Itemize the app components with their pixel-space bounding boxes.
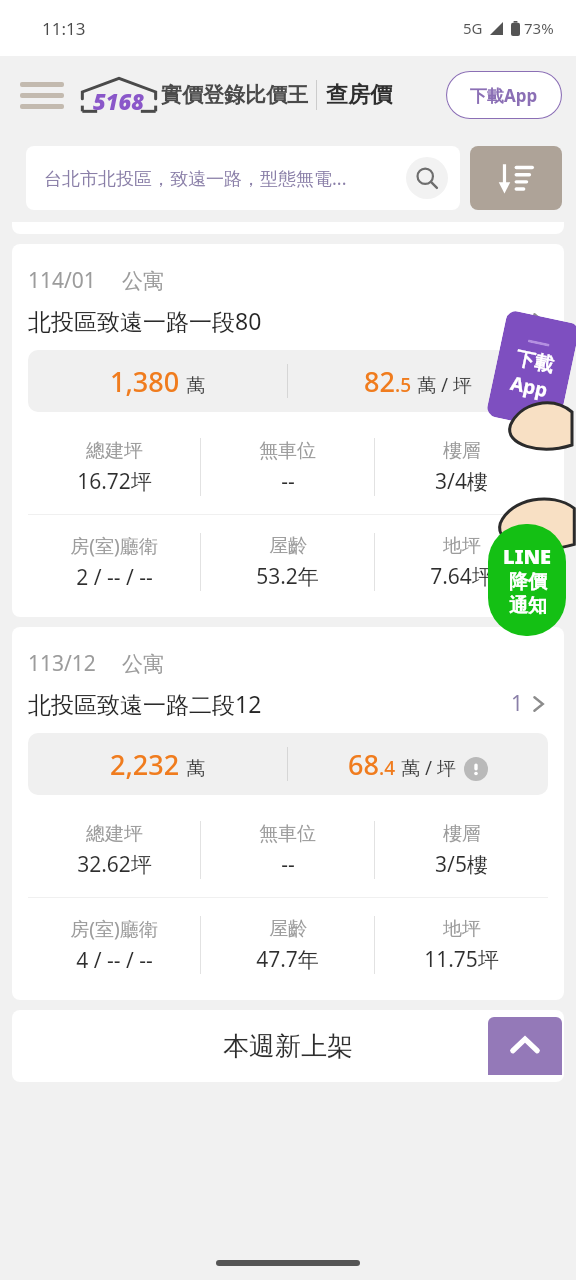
staticText: 北投區致遠一路二段12巷5弄14... xyxy=(28,688,269,719)
staticText: 地坪 xyxy=(443,917,481,941)
staticText: 屋齡 xyxy=(269,534,307,558)
button[interactable]: Sort xyxy=(470,146,562,210)
button[interactable]: 台北市北投區，致遠一路，型態無電... xyxy=(26,146,460,210)
staticText: 5168 xyxy=(93,86,145,114)
staticText: 房(室)廳衛 xyxy=(70,916,158,942)
staticText: -- xyxy=(281,850,295,879)
staticText: 房(室)廳衛 xyxy=(70,533,158,559)
staticText: 16.72坪 xyxy=(77,467,152,496)
staticText: 82 xyxy=(364,363,395,400)
staticText: 11:13 xyxy=(42,17,86,40)
staticText: 總建坪 xyxy=(86,439,143,463)
staticText: 3/4樓 xyxy=(435,467,488,496)
staticText: 2 / -- / -- xyxy=(76,563,153,592)
staticText: 5G xyxy=(463,18,483,38)
staticText: 47.7年 xyxy=(256,945,319,974)
staticText: 下載 xyxy=(514,346,556,378)
staticText: 1 xyxy=(511,689,524,718)
staticText: 公寓 xyxy=(122,268,164,294)
button[interactable]: Info xyxy=(464,757,488,781)
staticText: 無車位 xyxy=(259,822,316,846)
staticText: -- xyxy=(281,467,295,496)
button[interactable]: Scroll to top xyxy=(488,1017,562,1075)
staticText: 萬 xyxy=(186,374,205,398)
staticText: 7.64坪 xyxy=(430,562,493,591)
staticText: 萬 / 坪 xyxy=(401,755,456,781)
staticText: 屋齡 xyxy=(269,917,307,941)
button[interactable]: 查房價 xyxy=(326,81,392,109)
button[interactable]: 113/12 xyxy=(12,627,564,1000)
staticText: 通知 xyxy=(509,594,547,618)
staticText: 台北市北投區，致遠一路，型態無電... xyxy=(44,166,406,191)
staticText: App xyxy=(508,370,551,403)
staticText: 北投區致遠一路一段80巷4號3樓 xyxy=(28,305,269,336)
staticText: 114/01 xyxy=(28,266,96,295)
staticText: 73% xyxy=(524,18,554,38)
staticText: 總建坪 xyxy=(86,822,143,846)
button[interactable]: Menu xyxy=(20,75,66,115)
staticText: LINE xyxy=(503,543,552,570)
staticText: 1,380 xyxy=(110,363,180,400)
staticText: 2 xyxy=(511,306,524,335)
button[interactable]: LINE price alert xyxy=(488,524,566,636)
button[interactable]: 下載App xyxy=(446,71,562,119)
staticText: .5 xyxy=(395,372,412,398)
staticText: 3/5樓 xyxy=(435,850,488,879)
staticText: 4 / -- / -- xyxy=(76,946,153,975)
staticText: 32.62坪 xyxy=(77,850,152,879)
staticText: 下載App xyxy=(470,84,538,107)
staticText: .4 xyxy=(379,755,396,781)
staticText: 降價 xyxy=(509,570,547,594)
staticText: 樓層 xyxy=(443,439,481,463)
button[interactable]: 本週新上架 xyxy=(223,1030,353,1063)
staticText: 11.75坪 xyxy=(424,945,499,974)
staticText: 53.2年 xyxy=(256,562,319,591)
staticText: 實價登錄比價王 xyxy=(161,82,308,108)
staticText: 萬 / 坪 xyxy=(417,372,472,398)
staticText: 萬 xyxy=(186,757,205,781)
staticText: 2,232 xyxy=(110,746,180,783)
staticText: 113/12 xyxy=(28,649,96,678)
staticText: 地坪 xyxy=(443,534,481,558)
staticText: 樓層 xyxy=(443,822,481,846)
staticText: 無車位 xyxy=(259,439,316,463)
button[interactable]: Download App xyxy=(486,309,576,430)
staticText: 公寓 xyxy=(122,651,164,677)
button[interactable]: 114/01 xyxy=(12,244,564,617)
staticText: 68 xyxy=(348,746,379,783)
